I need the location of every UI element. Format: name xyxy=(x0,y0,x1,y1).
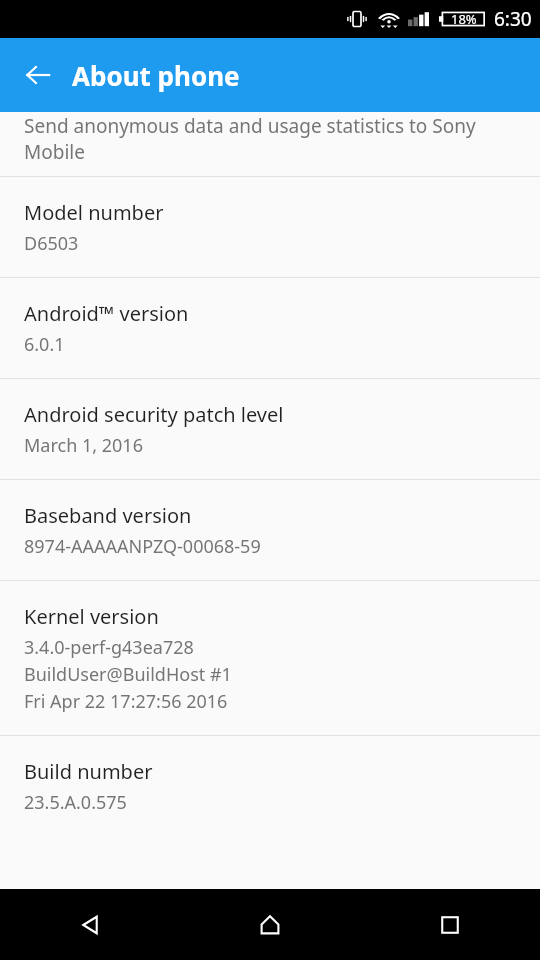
button[interactable]: Android™ version xyxy=(0,278,540,378)
staticText: Android™ version xyxy=(24,300,189,327)
staticText: Kernel version xyxy=(24,603,159,630)
staticText: Baseband version xyxy=(24,502,192,529)
button[interactable]: Recent apps xyxy=(360,889,540,960)
staticText: Build number xyxy=(24,758,153,785)
button[interactable]: Build number xyxy=(0,736,540,836)
button[interactable]: Navigate up xyxy=(10,47,66,103)
button[interactable]: Android security patch level xyxy=(0,379,540,479)
staticText: Model number xyxy=(24,199,164,226)
staticText: March 1, 2016 xyxy=(24,433,143,458)
staticText: Fri Apr 22 17:27:56 2016 xyxy=(24,689,228,714)
staticText: D6503 xyxy=(24,231,79,256)
staticText: Mobile xyxy=(24,139,85,165)
staticText: About phone xyxy=(72,58,240,93)
staticText: 3.4.0-perf-g43ea728 xyxy=(24,635,194,660)
staticText: 18% xyxy=(451,10,477,28)
staticText: 6.0.1 xyxy=(24,332,65,357)
staticText: Send anonymous data and usage statistics… xyxy=(24,113,476,139)
button[interactable]: Back xyxy=(0,889,180,960)
button[interactable]: Send anonymous data and usage statistics… xyxy=(0,112,540,176)
button[interactable]: Model number xyxy=(0,177,540,277)
button[interactable]: Home xyxy=(180,889,360,960)
button[interactable]: Kernel version xyxy=(0,581,540,735)
staticText: 8974-AAAAANPZQ-00068-59 xyxy=(24,534,261,559)
button[interactable]: Baseband version xyxy=(0,480,540,580)
staticText: BuildUser@BuildHost #1 xyxy=(24,662,232,687)
staticText: 23.5.A.0.575 xyxy=(24,790,127,815)
staticText: 6:30 xyxy=(494,6,532,32)
staticText: Android security patch level xyxy=(24,401,284,428)
